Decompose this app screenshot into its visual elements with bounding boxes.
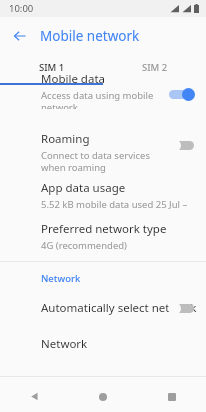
button[interactable]: App data usage [0, 180, 206, 211]
button[interactable]: Roaming [0, 127, 206, 174]
staticText: Mobile network [40, 27, 140, 45]
button[interactable]: Back [0, 381, 68, 412]
button[interactable]: Toggle off [168, 301, 195, 315]
staticText: 5.52 kB mobile data used 25 Jul – 24 Aug [41, 198, 198, 211]
staticText: Network [41, 272, 81, 285]
button[interactable]: Home [68, 381, 137, 412]
button[interactable]: Network [0, 332, 206, 356]
button[interactable]: Toggle off [168, 138, 195, 152]
staticText: Access data using mobile network [41, 89, 166, 109]
button[interactable]: Back [6, 22, 34, 50]
staticText: Connect to data services when roaming [41, 149, 166, 174]
button[interactable]: Automatically select network [0, 295, 206, 321]
staticText: SIM 1 [39, 61, 65, 74]
button[interactable]: Preferred network type [0, 221, 206, 252]
button[interactable]: Mobile data [0, 71, 206, 109]
button[interactable]: Recent apps [137, 381, 206, 412]
button[interactable]: SIM 2 [103, 54, 206, 81]
staticText: 4G (recommended) [41, 239, 127, 252]
staticText: Network [41, 336, 88, 352]
staticText: Roaming [41, 131, 90, 147]
staticText: Automatically select network [41, 300, 197, 316]
button[interactable]: SIM 1 [0, 54, 103, 81]
staticText: Mobile data [41, 71, 105, 87]
staticText: App data usage [41, 180, 126, 196]
staticText: Preferred network type [41, 221, 167, 237]
button[interactable]: Toggle on [168, 87, 195, 101]
staticText: 10:00 [9, 2, 34, 15]
staticText: SIM 2 [142, 61, 168, 74]
